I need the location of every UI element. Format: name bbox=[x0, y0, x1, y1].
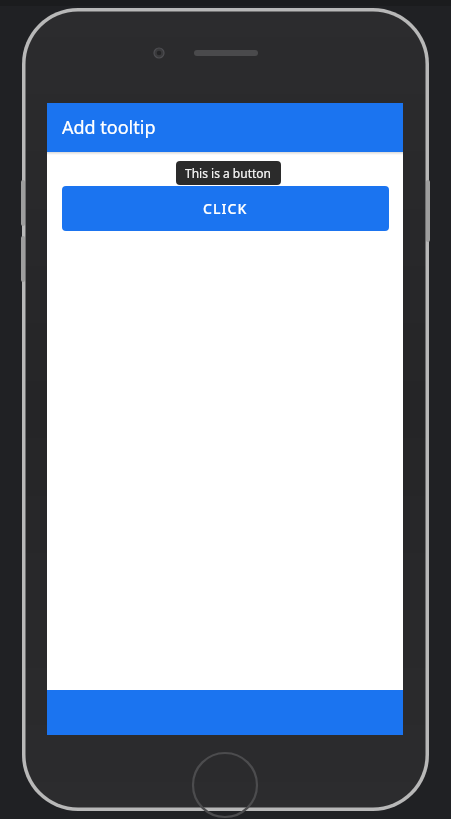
button[interactable]: CLICK bbox=[62, 186, 389, 231]
staticText: Add tooltip bbox=[62, 115, 156, 140]
staticText: CLICK bbox=[203, 199, 248, 218]
staticText: This is a button bbox=[185, 165, 272, 181]
